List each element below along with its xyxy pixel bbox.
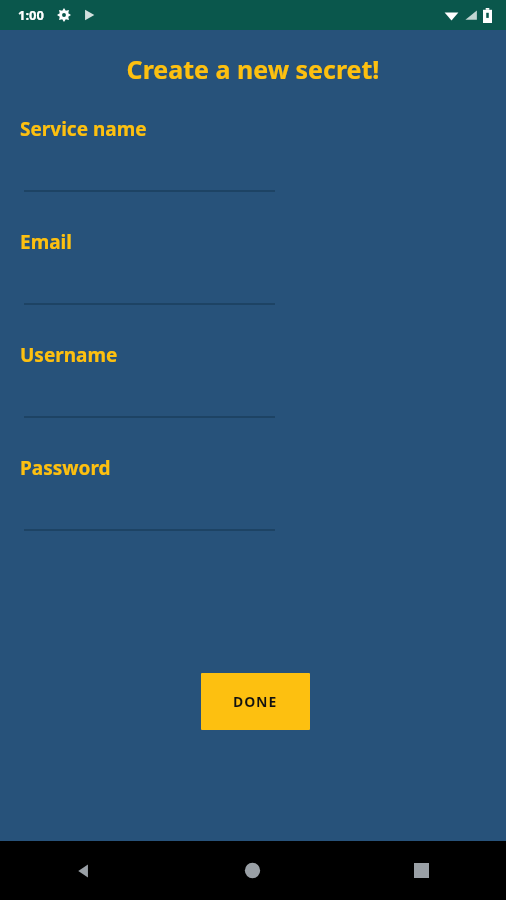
staticText: Create a new secret! (0, 52, 506, 86)
button[interactable]: Home (168, 841, 337, 900)
button[interactable]: Recent apps (337, 841, 506, 900)
staticText: Service name (20, 116, 147, 142)
button[interactable]: DONE (201, 673, 310, 730)
other: Settings (57, 8, 71, 22)
staticText: Email (20, 229, 72, 255)
staticText: 1:00 (18, 6, 44, 24)
button[interactable]: Back (0, 841, 168, 900)
staticText: Username (20, 342, 118, 368)
staticText: DONE (233, 692, 278, 711)
other: Play Store (82, 8, 96, 22)
staticText: Password (20, 455, 111, 481)
